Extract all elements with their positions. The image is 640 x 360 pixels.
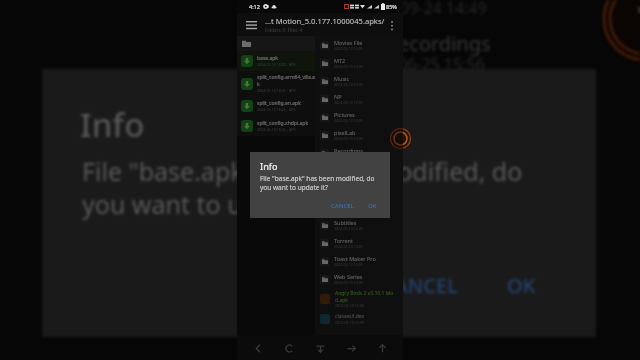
staticText: ...t Motion_5.0.177.1000045.apks/ bbox=[265, 16, 385, 26]
staticText: CANCEL bbox=[331, 202, 354, 210]
staticText: Music bbox=[334, 75, 350, 82]
staticText: 2024-06-10 12:05 bbox=[334, 136, 363, 141]
button[interactable]: Angry Birds 2 v3.10.1 Mo d.apk bbox=[315, 288, 403, 310]
button[interactable]: NP bbox=[315, 90, 403, 108]
staticText: File "base.apk" has been modified, do bbox=[260, 174, 375, 183]
staticText: 2024-06-10 18:25 - APK bbox=[257, 107, 296, 112]
button[interactable]: Subtitles bbox=[315, 216, 403, 234]
staticText: 2024-06-10 12:05 bbox=[334, 262, 363, 267]
staticText: 2024-06-10 18:25 - APK bbox=[257, 62, 296, 67]
staticText: Recordings bbox=[334, 147, 363, 154]
button[interactable]: More options bbox=[386, 19, 398, 31]
staticText: OK bbox=[368, 202, 377, 210]
staticText: split_config.xhdpi.apk bbox=[257, 120, 309, 127]
staticText: OK bbox=[507, 272, 536, 299]
staticText: you want to update it? bbox=[82, 187, 344, 221]
staticText: 2024-06-10 12:05 bbox=[334, 172, 363, 177]
staticText: Info bbox=[260, 160, 278, 172]
staticText: NP bbox=[334, 93, 342, 100]
staticText: Folders: 0 Files: 4 bbox=[265, 27, 303, 33]
staticText: 2024-06-10 12:05 bbox=[334, 64, 363, 69]
button[interactable]: Snaptube bbox=[315, 180, 403, 198]
staticText: Torrent bbox=[334, 237, 353, 244]
staticText: 2024-06-10 12:05 bbox=[334, 82, 363, 87]
button[interactable]: Torrent bbox=[315, 234, 403, 252]
button[interactable]: Refresh bbox=[279, 338, 299, 358]
button[interactable]: Music bbox=[315, 72, 403, 90]
button[interactable]: split_config.en.apk bbox=[237, 96, 315, 116]
staticText: 2024-06-10 12:05 bbox=[335, 303, 364, 308]
staticText: 85% bbox=[386, 3, 397, 10]
button[interactable]: split_config.arm64_v8a.ap k bbox=[237, 71, 315, 96]
button[interactable]: Download bbox=[310, 338, 330, 358]
staticText: MT2 bbox=[334, 57, 346, 64]
staticText: 06-25 15:56 bbox=[398, 53, 485, 75]
button[interactable]: Movies File bbox=[315, 36, 403, 54]
staticText: Web Series bbox=[334, 273, 363, 280]
staticText: split_config.arm64_v8a.ap k bbox=[257, 74, 315, 88]
staticText: 2024-06-10 18:25 - APK bbox=[257, 127, 296, 132]
staticText: 2024-06-10 12:05 bbox=[334, 100, 363, 105]
staticText: you want to update it? bbox=[260, 183, 328, 192]
staticText: 2024-06-10 12:05 bbox=[334, 226, 363, 231]
staticText: 2024-06-10 18:25 - APK bbox=[257, 88, 296, 93]
button[interactable]: Menu bbox=[244, 18, 258, 32]
button[interactable]: Add bbox=[390, 128, 411, 149]
staticText: 2024-06-10 12:05 bbox=[334, 280, 363, 285]
staticText: File "base.apk" has been modified, do bbox=[82, 154, 523, 188]
staticText: base.apk bbox=[257, 55, 278, 62]
button[interactable]: split_config.xhdpi.apk bbox=[237, 116, 315, 136]
staticText: Pictures bbox=[334, 111, 355, 118]
staticText: split_config.en.apk bbox=[257, 100, 301, 107]
staticText: 2024-06-10 12:05 bbox=[334, 244, 363, 249]
staticText: 2024-06-10 12:05 bbox=[334, 118, 363, 123]
button[interactable]: Up bbox=[372, 338, 392, 358]
button[interactable]: Recordings bbox=[315, 144, 403, 162]
staticText: Info bbox=[80, 102, 145, 147]
staticText: 2024-06-10 12:05 bbox=[335, 320, 364, 325]
button[interactable]: OK bbox=[364, 199, 381, 213]
button[interactable]: MT2 bbox=[315, 54, 403, 72]
staticText: classesX.dex bbox=[335, 313, 365, 320]
button[interactable]: classesX.dex bbox=[315, 310, 403, 328]
staticText: 4:12 bbox=[249, 3, 260, 10]
staticText: Angry Birds 2 v3.10.1 Mo d.apk bbox=[335, 290, 394, 303]
button[interactable]: Sounds bbox=[315, 198, 403, 216]
button[interactable]: Toast Maker Pro bbox=[315, 252, 403, 270]
button[interactable] bbox=[237, 36, 315, 51]
button[interactable]: CANCEL bbox=[327, 199, 358, 213]
staticText: 09-24 14:49 bbox=[400, 0, 487, 19]
button[interactable]: pixelLab bbox=[315, 126, 403, 144]
staticText: Toast Maker Pro bbox=[334, 255, 376, 262]
staticText: Sounds bbox=[334, 201, 354, 208]
staticText: 2024-06-10 12:05 bbox=[334, 46, 363, 51]
button[interactable]: Web Series bbox=[315, 270, 403, 288]
staticText: CANCEL bbox=[382, 272, 458, 299]
button[interactable]: Back bbox=[248, 338, 268, 358]
button[interactable]: Ringtones bbox=[315, 162, 403, 180]
staticText: Movies File bbox=[334, 39, 363, 46]
button[interactable]: base.apk bbox=[237, 51, 315, 71]
button[interactable]: Forward bbox=[341, 338, 361, 358]
button[interactable]: Pictures bbox=[315, 108, 403, 126]
staticText: ecordings bbox=[398, 30, 491, 57]
staticText: Subtitles bbox=[334, 219, 357, 226]
staticText: pixelLab bbox=[334, 129, 356, 136]
